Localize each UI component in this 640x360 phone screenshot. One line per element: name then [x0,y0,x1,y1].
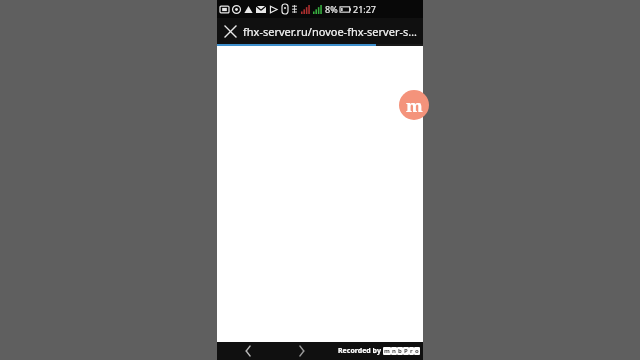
staticText: 21:27 [353,3,377,15]
staticText: m [406,94,423,117]
staticText: m [384,347,390,355]
button[interactable]: Back [235,342,261,360]
staticText: r [410,347,413,355]
staticText: P [404,347,408,355]
button[interactable]: Close [217,18,243,44]
staticText: b [398,347,402,355]
staticText: 8% [325,3,338,15]
staticText: o [415,347,419,355]
staticText: n [392,347,396,355]
button[interactable]: fhx-server.ru/novoe-fhx-server-s… [243,18,423,44]
staticText: fhx-server.ru/novoe-fhx-server-s… [243,24,417,39]
staticText: Recorded by [338,346,381,356]
button[interactable]: Forward [289,342,315,360]
